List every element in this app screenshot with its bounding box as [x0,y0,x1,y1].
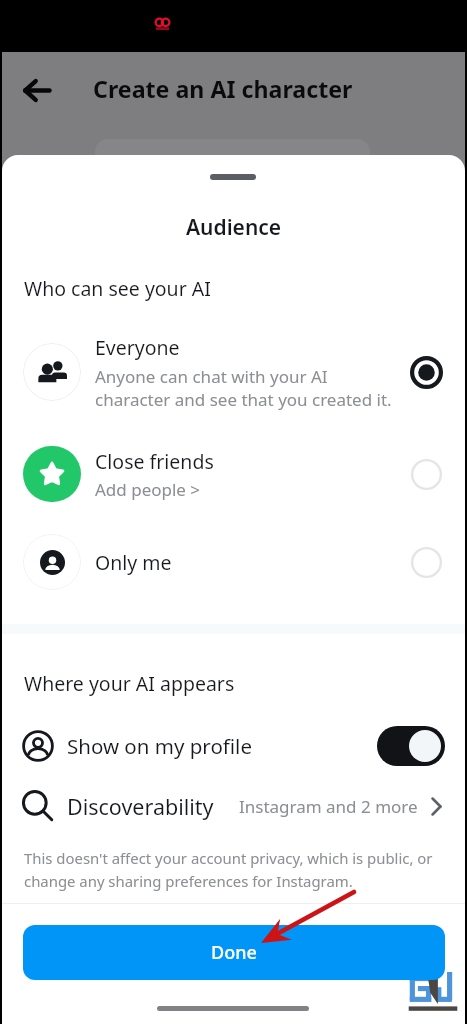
staticText: Instagram and 2 more [239,795,418,818]
button[interactable]: Everyone [2,333,465,411]
staticText: Show on my profile [67,732,252,760]
button[interactable]: Show on my profile [2,722,465,770]
staticText: Where your AI appears [24,670,235,697]
button[interactable]: Back [9,62,65,118]
staticText: Done [211,940,257,965]
staticText: Create an AI character [93,73,353,105]
button[interactable]: Discoverability [2,784,465,828]
staticText: Everyone [95,334,180,361]
staticText: Add people > [95,478,201,501]
staticText: Anyone can chat with your AI character a… [95,365,392,411]
staticText: Only me [95,549,172,576]
staticText: Audience [186,213,282,242]
staticText: Discoverability [67,792,214,821]
button[interactable]: Only me [2,534,465,590]
staticText: This doesn't affect your account privacy… [24,848,433,891]
button[interactable]: Done [23,925,445,980]
staticText: Who can see your AI [24,275,211,302]
staticText: Close friends [95,448,214,475]
button[interactable]: Close friends [2,446,465,502]
